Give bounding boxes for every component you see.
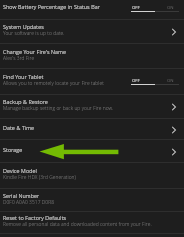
button[interactable]: Show Battery Percentage in Status Bar [0,0,184,20]
button[interactable]: Find Your Tablet [0,69,184,95]
staticText: Your software is up to date. [3,30,65,37]
staticText: Allows you to remotely locate your Fire … [3,80,104,87]
button[interactable]: Device Model [0,163,184,189]
button[interactable]: Toggle off [131,76,179,88]
staticText: Find Your Tablet [3,73,44,80]
staticText: Storage [3,146,23,153]
staticText: D0F0 A0A0 3517 D0R8 [3,199,55,206]
staticText: Reset to Factory Defaults [3,214,67,221]
staticText: Device Model [3,167,37,174]
button[interactable]: Backup & Restore [0,95,184,119]
staticText: ON [167,4,174,10]
button[interactable]: Open [167,100,181,114]
button[interactable]: Open [167,123,181,137]
staticText: OFF [132,77,140,83]
staticText: Remove all personal data and downloaded … [3,221,152,228]
button[interactable]: Open [167,145,181,159]
button[interactable]: Serial Number [0,189,184,212]
button[interactable]: System Updates [0,20,184,44]
staticText: OFF [132,4,140,10]
button[interactable]: Reset to Factory Defaults [0,212,184,234]
button[interactable]: Date & Time [0,119,184,140]
staticText: Alex's 3rd Fire [3,55,35,62]
staticText: System Updates [3,23,44,30]
staticText: Date & Time [3,124,35,131]
staticText: Change Your Fire's Name [3,48,66,55]
button[interactable]: Toggle off [131,3,179,15]
staticText: Manage backup setting or back up your Fi… [3,105,114,112]
button[interactable]: Storage [0,140,184,163]
staticText: Serial Number [3,192,40,199]
button[interactable]: Change Your Fire's Name [0,44,184,69]
staticText: Kindle Fire HDX (3rd Generation) [3,174,76,181]
staticText: Backup & Restore [3,98,48,105]
staticText: ON [167,77,174,83]
button[interactable]: Open [167,25,181,39]
staticText: Show Battery Percentage in Status Bar [3,3,100,10]
